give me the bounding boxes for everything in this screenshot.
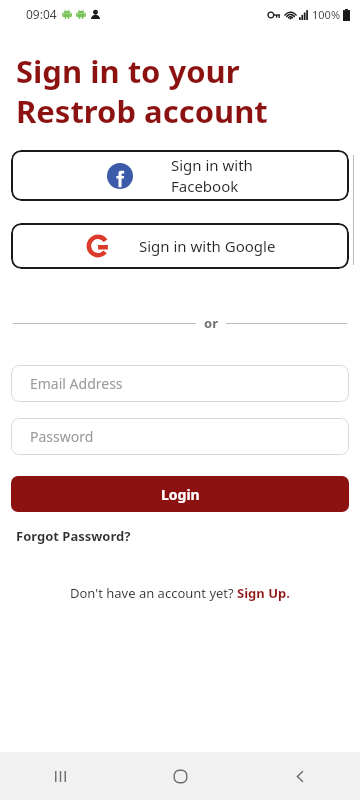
button[interactable]: Sign in with Facebook: [11, 150, 349, 201]
staticText: Don't have an account yet? Sign Up.: [70, 584, 290, 602]
button[interactable]: Recent apps: [0, 752, 120, 800]
button[interactable]: Email Address: [11, 365, 349, 402]
button[interactable]: Home: [120, 752, 240, 800]
button[interactable]: Forgot Password?: [16, 527, 131, 545]
button[interactable]: Login: [11, 476, 349, 512]
button[interactable]: Sign in with Google: [11, 223, 349, 269]
staticText: Login: [161, 485, 200, 504]
staticText: 09:04: [26, 6, 57, 22]
button[interactable]: Password: [11, 418, 349, 455]
staticText: Forgot Password?: [16, 527, 131, 545]
staticText: Sign in to your Restrob account: [16, 50, 268, 132]
staticText: Email Address: [30, 374, 123, 393]
button[interactable]: Don't have an account yet? Sign Up.: [0, 584, 360, 602]
staticText: Password: [30, 427, 94, 446]
staticText: Sign in with Facebook: [171, 155, 253, 197]
staticText: Sign in with Google: [139, 236, 276, 256]
button[interactable]: Back: [240, 752, 360, 800]
staticText: or: [204, 314, 218, 332]
staticText: 100%: [312, 7, 341, 22]
